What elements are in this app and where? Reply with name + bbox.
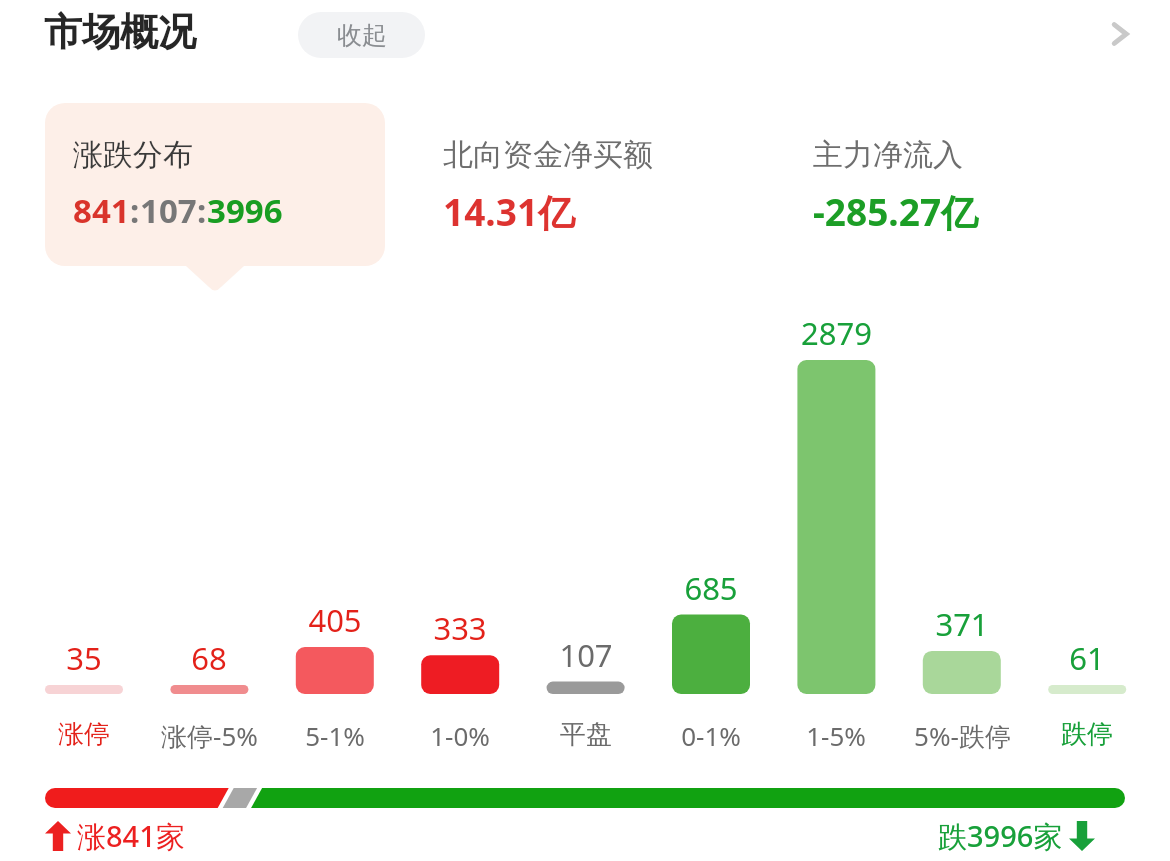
- staticText: 107: [140, 188, 197, 233]
- button[interactable]: 市场概况: [44, 8, 200, 56]
- staticText: 北向资金净买额: [443, 136, 653, 174]
- staticText: 0-1%: [681, 718, 741, 753]
- button[interactable]: 涨跌分布: [45, 103, 385, 292]
- staticText: -285.27亿: [813, 186, 979, 237]
- button[interactable]: 1-0%: [399, 718, 521, 753]
- button[interactable]: 涨停: [23, 718, 145, 751]
- button[interactable]: 跌3996家: [938, 816, 1095, 856]
- staticText: 333: [433, 607, 487, 649]
- staticText: 跌3996家: [938, 816, 1063, 856]
- staticText: 405: [308, 599, 362, 641]
- staticText: 685: [684, 567, 738, 609]
- staticText: :: [130, 188, 140, 233]
- staticText: 68: [191, 637, 227, 679]
- staticText: 1-5%: [806, 718, 866, 753]
- staticText: 1-0%: [430, 718, 490, 753]
- staticText: 涨841家: [77, 816, 185, 856]
- staticText: 61: [1069, 637, 1105, 679]
- button[interactable]: 0-1%: [650, 718, 772, 753]
- staticText: 市场概况: [44, 8, 196, 56]
- button[interactable]: 北向资金净买额: [415, 103, 755, 276]
- button[interactable]: 主力净流入: [785, 103, 1125, 276]
- staticText: 平盘: [560, 718, 612, 751]
- staticText: :: [197, 188, 207, 233]
- staticText: 14.31亿: [443, 186, 576, 237]
- staticText: 841: [73, 188, 130, 233]
- staticText: 涨停: [58, 718, 110, 751]
- button[interactable]: 平盘: [525, 718, 647, 751]
- staticText: 5-1%: [305, 718, 365, 753]
- button[interactable]: 收起: [298, 12, 425, 58]
- staticText: 35: [66, 637, 102, 679]
- button[interactable]: 更多: [1094, 8, 1146, 60]
- button[interactable]: 5%-跌停: [901, 718, 1023, 754]
- button[interactable]: 涨停-5%: [148, 718, 270, 754]
- button[interactable]: 1-5%: [775, 718, 897, 753]
- staticText: 2879: [801, 312, 872, 354]
- staticText: 主力净流入: [813, 136, 963, 174]
- staticText: 371: [935, 603, 989, 645]
- staticText: 3996: [207, 188, 283, 233]
- staticText: 涨跌分布: [73, 136, 193, 174]
- button[interactable]: 涨841家: [45, 816, 185, 856]
- staticText: 跌停: [1061, 718, 1113, 751]
- staticText: 5%-跌停: [914, 718, 1011, 754]
- staticText: 收起: [337, 20, 387, 51]
- staticText: 107: [559, 634, 613, 676]
- button[interactable]: 跌停: [1026, 718, 1148, 751]
- staticText: 涨停-5%: [161, 718, 258, 754]
- button[interactable]: 5-1%: [274, 718, 396, 753]
